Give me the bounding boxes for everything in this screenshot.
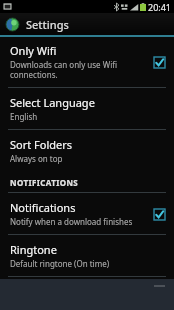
button[interactable]: Checked [152,55,166,69]
staticText: Sort Folders [10,137,73,152]
staticText: Notifications [10,200,76,215]
staticText: English [10,111,38,122]
button[interactable]: Ringtone [0,235,174,276]
button[interactable]: Select Language [0,88,174,129]
staticText: Always on top [10,153,63,164]
staticText: 20:41 [148,1,172,13]
button[interactable]: Checked [152,207,166,221]
staticText: Ringtone [10,242,57,257]
button[interactable]: Notifications [0,193,174,234]
staticText: Settings [26,17,69,32]
button[interactable]: Sort Folders [0,130,174,170]
staticText: Only Wifi [10,43,57,58]
staticText: Notify when a download finishes [10,216,133,227]
staticText: Downloads can only use Wifi connections. [10,59,118,80]
staticText: NOTIFICATIONS [10,177,79,188]
staticText: Default ringtone (On time) [10,258,110,269]
button[interactable]: Only Wifi [0,37,174,87]
staticText: Select Language [10,95,95,110]
